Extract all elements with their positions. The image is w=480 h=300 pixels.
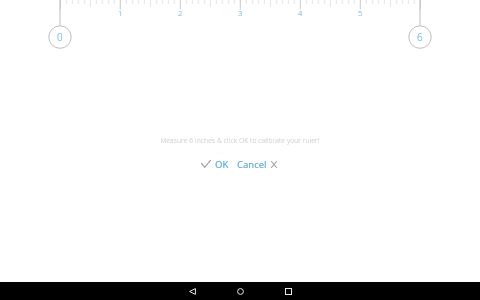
staticText: Measure 6 inches & click OK to calibrate… xyxy=(160,136,320,145)
staticText: 1 xyxy=(118,8,123,18)
staticText: OK xyxy=(215,158,229,171)
button[interactable]: Ruler handle 6 inches xyxy=(400,0,440,52)
button[interactable]: OK xyxy=(201,155,229,173)
button[interactable]: Back xyxy=(183,282,201,300)
staticText: 6 xyxy=(417,30,423,43)
button[interactable]: Recents xyxy=(279,282,297,300)
staticText: 0 xyxy=(57,30,63,43)
button[interactable]: Home xyxy=(231,282,249,300)
staticText: 2 xyxy=(178,8,183,18)
staticText: 4 xyxy=(298,8,303,18)
staticText: 5 xyxy=(358,8,363,18)
staticText: Cancel xyxy=(237,158,267,171)
staticText: 3 xyxy=(238,8,243,18)
button[interactable]: Cancel xyxy=(237,155,277,173)
button[interactable]: Ruler handle 0 inches xyxy=(40,0,80,52)
